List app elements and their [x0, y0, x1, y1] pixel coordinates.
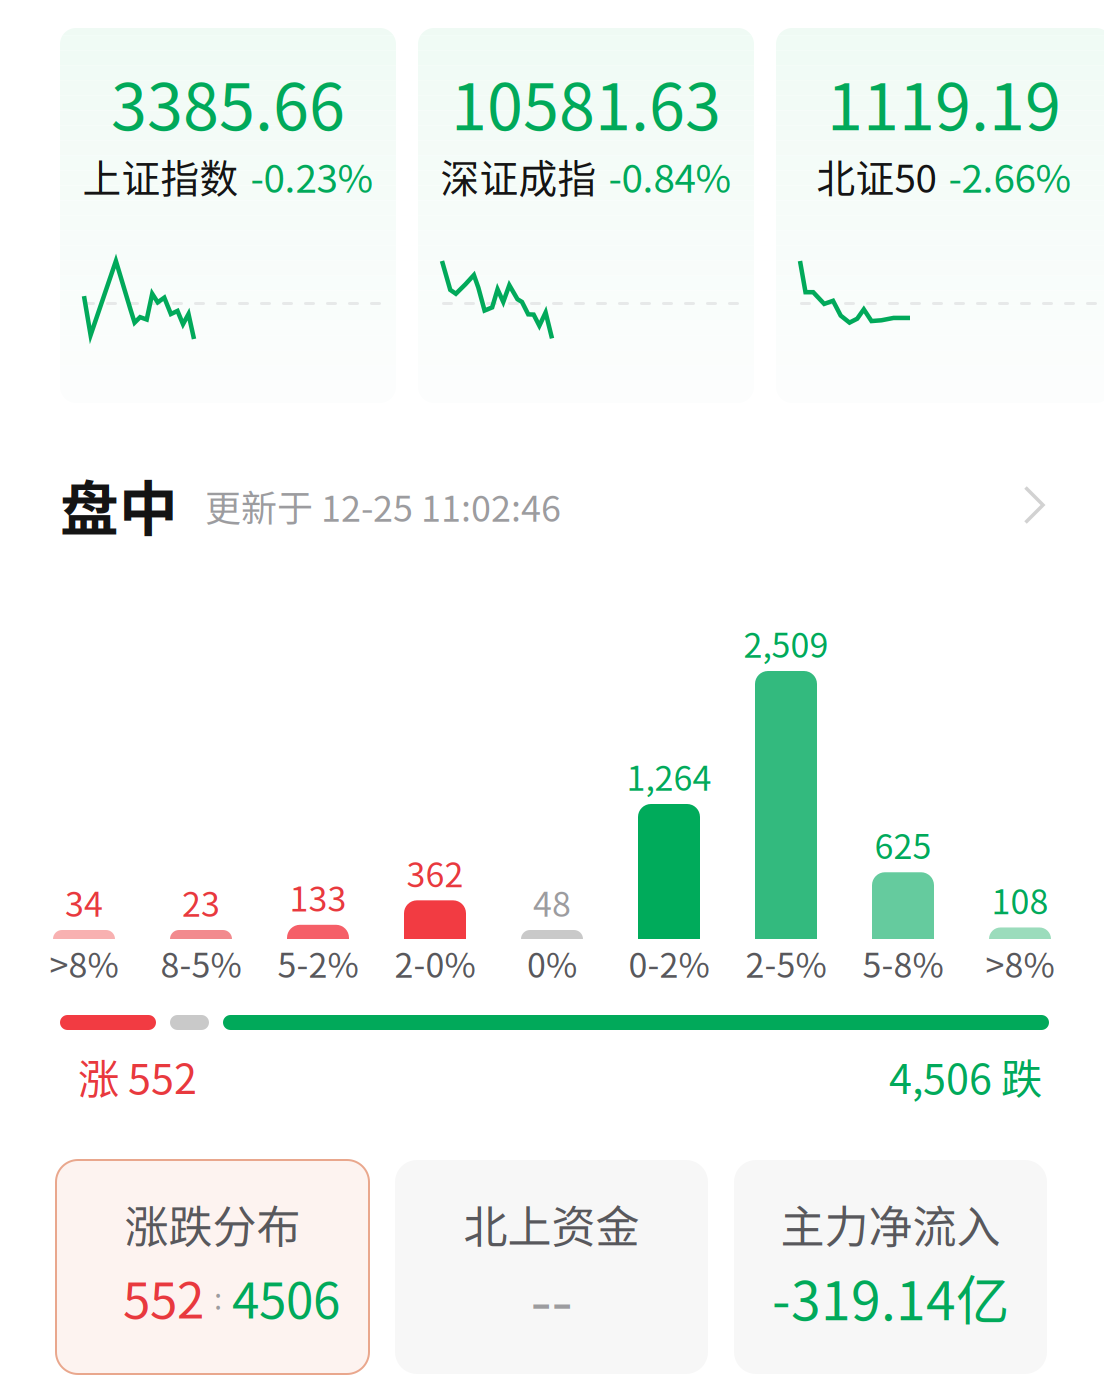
staticText: 5-8% — [862, 938, 943, 988]
staticText: 8-5% — [160, 938, 241, 988]
staticText: -0.23% — [250, 148, 373, 204]
staticText: 23 — [182, 877, 220, 927]
button[interactable]: 北上资金 — [395, 1160, 708, 1374]
staticText: -- — [530, 1253, 572, 1341]
staticText: -319.14亿 — [772, 1258, 1009, 1336]
staticText: 主力净流入 — [780, 1192, 1000, 1256]
staticText: 1,264 — [626, 751, 711, 801]
staticText: 3385.66 — [111, 55, 345, 149]
staticText: 2,509 — [743, 618, 828, 668]
staticText: 0% — [527, 938, 577, 988]
staticText: 北上资金 — [463, 1192, 639, 1256]
staticText: 2-5% — [745, 938, 826, 988]
staticText: 涨 552 — [78, 1046, 197, 1106]
staticText: 625 — [874, 820, 931, 869]
staticText: 0-2% — [628, 938, 709, 988]
staticText: 北证50 — [816, 148, 936, 204]
button[interactable]: 盘中 — [0, 462, 1104, 572]
staticText: 34 — [65, 877, 103, 927]
staticText: 10581.63 — [451, 55, 721, 149]
staticText: 108 — [991, 875, 1048, 924]
button[interactable]: 涨跌分布 — [56, 1160, 369, 1374]
staticText: 48 — [533, 877, 571, 927]
staticText: 4506 — [232, 1261, 340, 1333]
staticText: 1119.19 — [827, 55, 1061, 149]
staticText: 4,506 跌 — [889, 1046, 1042, 1106]
button[interactable]: 1119.19 — [776, 28, 1104, 403]
button[interactable]: 10581.63 — [418, 28, 754, 403]
staticText: : — [214, 1276, 222, 1318]
staticText: 2-0% — [394, 938, 475, 988]
staticText: 更新于 12-25 11:02:46 — [205, 480, 561, 532]
staticText: 552 — [123, 1261, 204, 1333]
staticText: 362 — [406, 848, 463, 897]
staticText: 盘中 — [60, 462, 178, 547]
staticText: 5-2% — [277, 938, 358, 988]
staticText: >8% — [985, 938, 1054, 988]
staticText: -0.84% — [608, 148, 731, 204]
button[interactable]: 主力净流入 — [734, 1160, 1047, 1374]
staticText: -2.66% — [948, 148, 1071, 204]
staticText: 深证成指 — [440, 148, 596, 204]
staticText: 133 — [289, 872, 346, 921]
button[interactable]: 3385.66 — [60, 28, 396, 403]
staticText: 上证指数 — [82, 148, 238, 204]
staticText: 涨跌分布 — [124, 1192, 300, 1256]
staticText: >8% — [49, 938, 118, 988]
